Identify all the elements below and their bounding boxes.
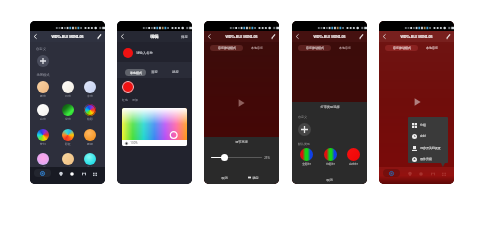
button[interactable]: Devices xyxy=(404,168,415,179)
button[interactable]: Brightness slider xyxy=(221,154,228,161)
button[interactable]: 柔光 xyxy=(58,153,78,170)
staticText: 单色模式 xyxy=(130,71,142,75)
staticText: 100% xyxy=(130,141,138,145)
button[interactable]: Play xyxy=(235,97,247,109)
staticText: 本地音乐 xyxy=(426,46,438,50)
button[interactable]: Back xyxy=(117,31,128,42)
button[interactable]: 暖光 xyxy=(33,81,53,98)
button[interactable]: 音乐律动模式 xyxy=(210,45,243,51)
button[interactable]: 同步开关机设置 xyxy=(408,142,448,154)
button[interactable]: 取消 xyxy=(217,173,231,182)
button[interactable]: 取消 xyxy=(292,175,367,184)
button[interactable]: Back xyxy=(204,31,215,42)
button[interactable]: 绿光 xyxy=(58,104,78,121)
staticText: WIFI+BLE MINI-05 xyxy=(313,34,346,39)
button[interactable]: Back xyxy=(30,31,41,42)
button[interactable]: 确定 xyxy=(248,173,259,182)
button[interactable]: More xyxy=(89,168,100,179)
button[interactable]: 音乐律动模式 xyxy=(298,45,331,51)
staticText: 暖光 xyxy=(40,94,46,98)
button[interactable]: 本地音乐 xyxy=(251,46,263,50)
staticText: 暖橙 xyxy=(87,142,93,146)
button[interactable]: 全彩灯 xyxy=(298,148,314,166)
staticText: 本地音乐 xyxy=(251,46,263,50)
button[interactable]: Edit xyxy=(356,31,367,42)
staticText: 音乐律动模式 xyxy=(218,46,236,50)
button[interactable]: Devices xyxy=(55,168,66,179)
button[interactable]: 彩虹 xyxy=(58,129,78,146)
button[interactable]: Add strip type xyxy=(298,123,311,136)
staticText: WIFI+BLE MINI-05 xyxy=(51,34,84,39)
button[interactable]: Edit xyxy=(94,31,105,42)
button[interactable]: Music xyxy=(427,168,438,179)
staticText: 日光 xyxy=(65,94,71,98)
button[interactable]: 分组 xyxy=(408,119,448,131)
staticText: 编辑 xyxy=(150,34,159,39)
staticText: 白光灯 xyxy=(349,162,358,166)
staticText: 固件升级 xyxy=(420,157,432,161)
button[interactable]: 冷光 xyxy=(80,81,100,98)
button[interactable]: Scenes xyxy=(66,168,77,179)
button[interactable]: Colour gradient xyxy=(122,108,187,140)
button[interactable]: 炫彩 xyxy=(80,104,100,121)
button[interactable]: More xyxy=(438,168,449,179)
button[interactable]: 梦幻 xyxy=(33,129,53,146)
staticText: 取消 xyxy=(221,176,228,180)
button[interactable]: 本地音乐 xyxy=(339,46,351,50)
staticText: 跳变 xyxy=(172,70,179,74)
staticText: 自定义 xyxy=(36,47,46,51)
button[interactable]: 白光 xyxy=(33,104,53,121)
button[interactable]: 音乐律动模式 xyxy=(385,45,418,51)
staticText: 默认类型 xyxy=(298,142,310,146)
button[interactable]: Play xyxy=(411,96,423,108)
staticText: WIFI+BLE MINI-05 xyxy=(225,34,258,39)
staticText: 本地音乐 xyxy=(339,46,351,50)
staticText: 冷光 xyxy=(87,94,93,98)
staticText: 梦幻 xyxy=(40,142,46,146)
button[interactable]: 跳变 xyxy=(172,70,179,74)
staticText: 音乐律动模式 xyxy=(393,46,411,50)
staticText: 音乐律动模式 xyxy=(306,46,324,50)
staticText: 场景模式 xyxy=(36,73,50,77)
button[interactable]: Edit xyxy=(268,31,279,42)
button[interactable]: 本地音乐 xyxy=(426,46,438,50)
button[interactable]: 定时 xyxy=(408,130,448,142)
staticText: 25% xyxy=(264,156,270,160)
staticText: 彩虹 xyxy=(65,142,71,146)
button[interactable]: 青光 xyxy=(80,153,100,170)
button[interactable]: 渐变 xyxy=(151,70,158,74)
button[interactable]: 日光 xyxy=(58,81,78,98)
button[interactable]: Home xyxy=(34,169,51,177)
staticText: 白光 xyxy=(40,117,46,121)
button[interactable]: Selected colour xyxy=(122,81,134,93)
button[interactable]: Pick colour xyxy=(123,48,133,58)
staticText: 请输入名称 xyxy=(136,51,153,55)
button[interactable]: 暖橙 xyxy=(80,129,100,146)
staticText: 灯带类型选择 xyxy=(320,105,340,109)
button[interactable]: 添加 xyxy=(132,98,138,102)
staticText: 青光 xyxy=(87,166,93,170)
button[interactable]: Back xyxy=(292,31,303,42)
staticText: 炫彩 xyxy=(87,117,93,121)
button[interactable]: 粉蓝 xyxy=(33,153,53,170)
staticText: 确定 xyxy=(252,176,259,180)
button[interactable]: 保存 xyxy=(181,35,188,39)
staticText: 自定义 xyxy=(298,115,307,119)
button[interactable]: 红色 xyxy=(122,98,128,102)
staticText: 添加 xyxy=(132,98,138,102)
staticText: 粉蓝 xyxy=(40,166,46,170)
staticText: 调节亮度 xyxy=(235,140,248,144)
button[interactable]: Edit xyxy=(443,31,454,42)
button[interactable]: 单色模式 xyxy=(125,69,146,76)
button[interactable]: Add xyxy=(37,55,49,67)
button[interactable]: Scenes xyxy=(415,168,426,179)
button[interactable]: Home xyxy=(383,169,400,177)
staticText: 分组 xyxy=(420,123,426,127)
button[interactable]: Music xyxy=(78,168,89,179)
button[interactable]: 幻彩灯 xyxy=(322,148,338,166)
staticText: 取消 xyxy=(326,178,333,182)
button[interactable]: 固件升级 xyxy=(408,153,448,163)
staticText: 绿光 xyxy=(65,117,71,121)
button[interactable]: 白光灯 xyxy=(345,148,361,166)
button[interactable]: Back xyxy=(379,31,390,42)
